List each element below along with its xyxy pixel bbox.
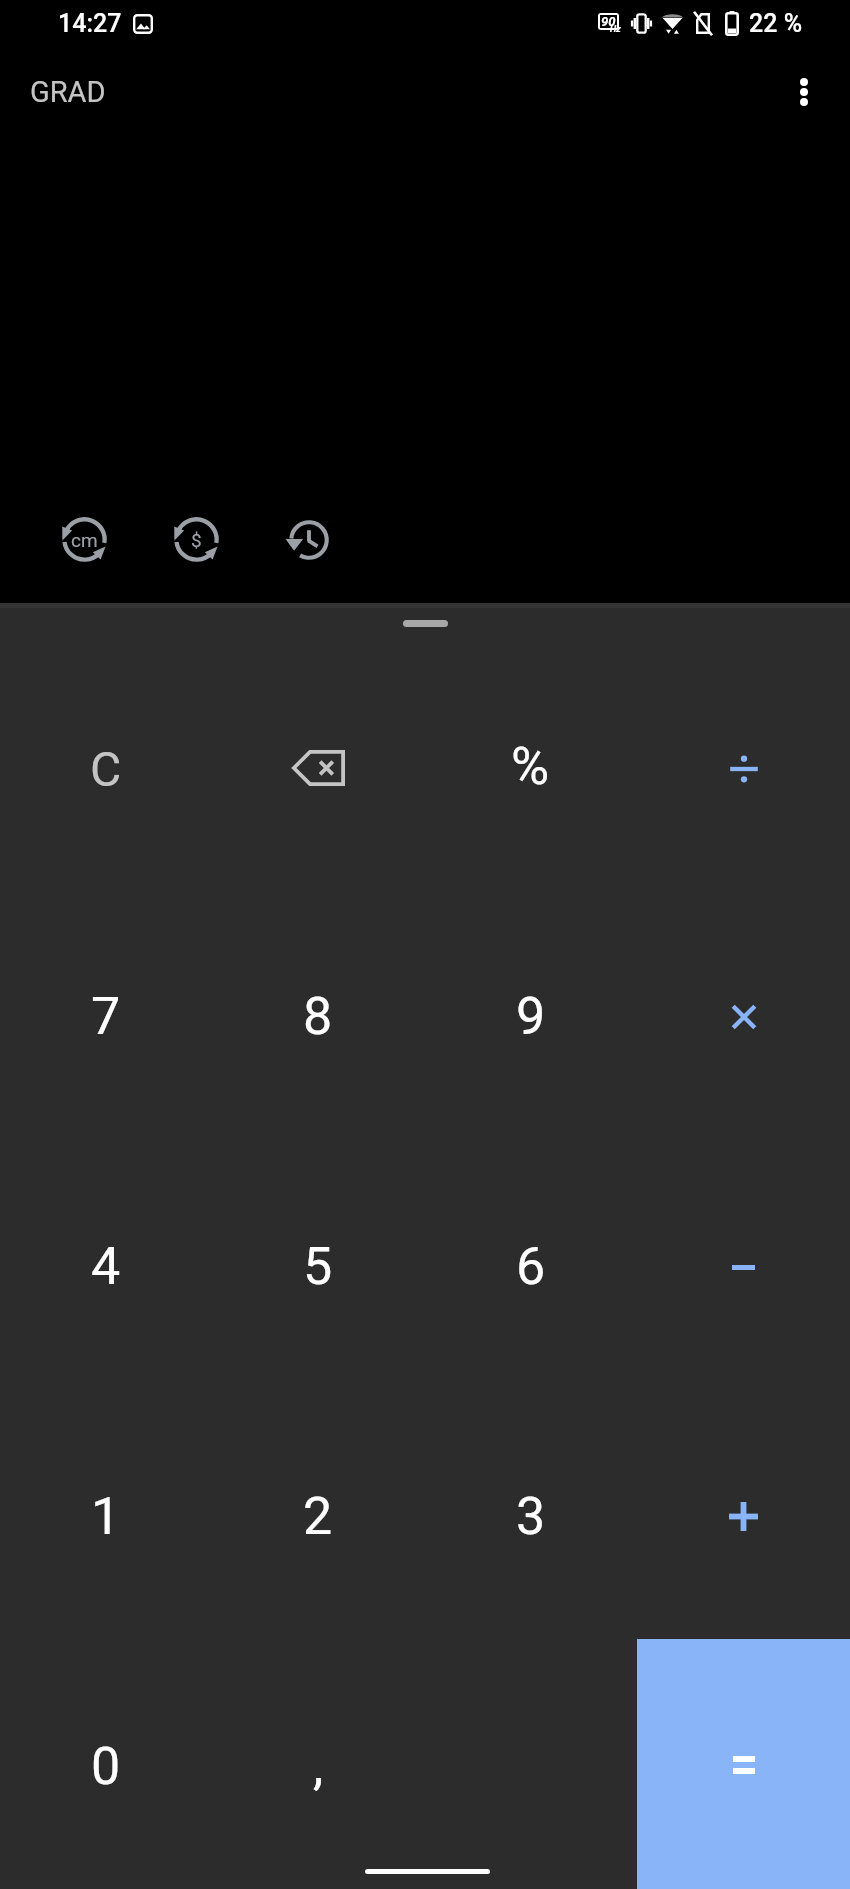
staticText: GRAD xyxy=(30,75,106,109)
button[interactable]: C xyxy=(0,639,212,889)
staticText: 5 xyxy=(303,1236,333,1297)
button[interactable]: 5 xyxy=(212,1139,424,1389)
staticText: 14:27 xyxy=(58,9,122,38)
staticText: 6 xyxy=(516,1236,546,1297)
button[interactable]: History xyxy=(273,504,344,575)
staticText: C xyxy=(90,741,122,797)
button[interactable]: GRAD xyxy=(12,61,124,123)
staticText: $ xyxy=(191,529,202,551)
button[interactable]: 7 xyxy=(0,889,212,1139)
staticText: 22 % xyxy=(749,9,803,38)
button[interactable]: , xyxy=(212,1639,424,1889)
button[interactable]: % xyxy=(424,639,637,889)
button[interactable]: Multiply xyxy=(637,889,850,1139)
button[interactable]: Subtract xyxy=(637,1139,850,1389)
button[interactable]: Equals xyxy=(637,1639,850,1889)
staticText: 0 xyxy=(91,1736,121,1797)
button[interactable]: 3 xyxy=(424,1389,637,1639)
staticText: 4 xyxy=(91,1236,121,1297)
staticText: 90 xyxy=(601,14,616,27)
button[interactable]: 2 xyxy=(212,1389,424,1639)
staticText: cm xyxy=(71,529,98,551)
button[interactable]: Unit converter xyxy=(49,504,120,575)
staticText: , xyxy=(313,1736,324,1797)
staticText: 2 xyxy=(303,1486,333,1547)
staticText: Hz xyxy=(610,24,621,35)
button[interactable]: 8 xyxy=(212,889,424,1139)
button[interactable]: Backspace xyxy=(212,639,424,889)
button[interactable]: 1 xyxy=(0,1389,212,1639)
button[interactable]: Divide xyxy=(637,639,850,889)
button[interactable]: 6 xyxy=(424,1139,637,1389)
staticText: 9 xyxy=(516,986,546,1047)
button[interactable]: Add xyxy=(637,1389,850,1639)
staticText: 8 xyxy=(303,986,333,1047)
staticText: % xyxy=(511,736,550,797)
button[interactable]: 4 xyxy=(0,1139,212,1389)
button[interactable]: More options xyxy=(772,60,836,124)
button[interactable]: 0 xyxy=(0,1639,212,1889)
staticText: 3 xyxy=(516,1486,546,1547)
button[interactable]: 9 xyxy=(424,889,637,1139)
staticText: 1 xyxy=(91,1486,121,1547)
button[interactable]: Currency converter xyxy=(161,504,232,575)
staticText: 7 xyxy=(91,986,121,1047)
